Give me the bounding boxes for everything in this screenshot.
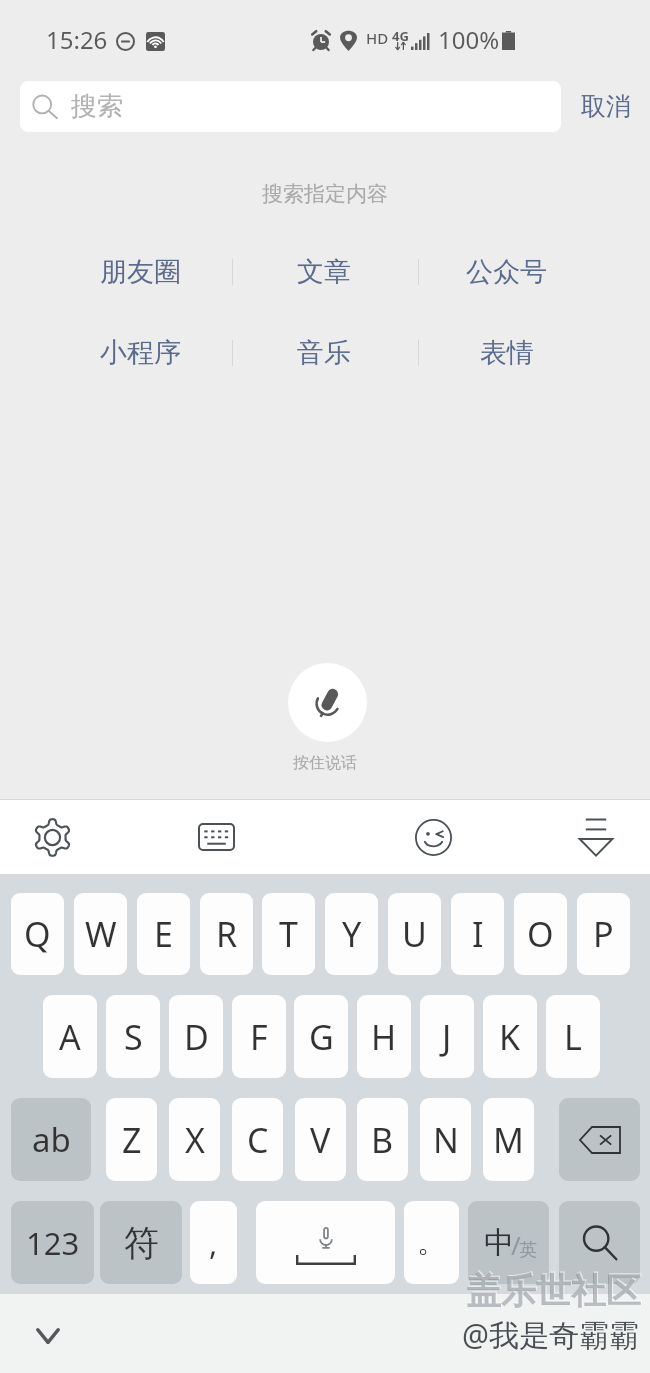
staticText: C: [247, 1117, 269, 1163]
button[interactable]: J: [420, 995, 474, 1078]
staticText: 取消: [581, 91, 631, 122]
button[interactable]: 音乐: [232, 333, 415, 373]
staticText: 。: [417, 1224, 446, 1261]
button[interactable]: Hold to talk: [288, 663, 367, 742]
button[interactable]: 123: [11, 1201, 94, 1284]
staticText: 100%: [438, 23, 500, 56]
staticText: Y: [342, 911, 362, 957]
staticText: H: [371, 1014, 397, 1060]
staticText: T: [279, 911, 298, 957]
button[interactable]: Emoji: [397, 800, 469, 874]
staticText: 符: [124, 1221, 159, 1265]
staticText: X: [185, 1117, 205, 1163]
staticText: R: [216, 911, 238, 957]
button[interactable]: M: [483, 1098, 534, 1181]
staticText: 中: [484, 1224, 514, 1262]
button[interactable]: 符: [100, 1201, 182, 1284]
button[interactable]: [256, 1201, 395, 1284]
staticText: D: [184, 1014, 209, 1060]
staticText: 文章: [297, 255, 351, 289]
button[interactable]: F: [232, 995, 286, 1078]
staticText: G: [309, 1014, 334, 1060]
button[interactable]: Keyboard layout: [180, 800, 252, 874]
button[interactable]: I: [451, 893, 504, 975]
button[interactable]: H: [357, 995, 411, 1078]
button[interactable]: 表情: [415, 333, 598, 373]
button[interactable]: X: [169, 1098, 220, 1181]
button[interactable]: Chinese / English: [468, 1201, 549, 1284]
staticText: P: [593, 911, 614, 957]
button[interactable]: Keyboard settings: [16, 800, 88, 874]
button[interactable]: R: [200, 893, 253, 975]
button[interactable]: T: [262, 893, 315, 975]
button[interactable]: 搜索: [20, 81, 561, 132]
staticText: J: [442, 1014, 452, 1060]
staticText: 按住说话: [293, 753, 357, 773]
staticText: U: [402, 911, 427, 957]
button[interactable]: P: [577, 893, 630, 975]
staticText: 搜索指定内容: [0, 181, 650, 207]
staticText: @我是奇霸霸: [462, 1314, 639, 1355]
button[interactable]: D: [169, 995, 223, 1078]
button[interactable]: 公众号: [415, 252, 598, 292]
button[interactable]: K: [483, 995, 537, 1078]
button[interactable]: N: [420, 1098, 471, 1181]
staticText: 盖乐世社区: [467, 1268, 642, 1312]
staticText: L: [564, 1014, 582, 1060]
button[interactable]: V: [295, 1098, 346, 1181]
button[interactable]: Collapse keyboard: [560, 800, 632, 874]
staticText: W: [85, 911, 117, 957]
staticText: M: [493, 1117, 524, 1163]
button[interactable]: B: [357, 1098, 408, 1181]
staticText: I: [472, 911, 484, 957]
staticText: B: [371, 1117, 394, 1163]
button[interactable]: 文章: [232, 252, 415, 292]
button[interactable]: O: [514, 893, 567, 975]
staticText: 小程序: [100, 336, 181, 370]
staticText: N: [433, 1117, 459, 1163]
staticText: 表情: [480, 336, 534, 370]
staticText: S: [124, 1014, 143, 1060]
button[interactable]: W: [74, 893, 127, 975]
staticText: K: [499, 1014, 521, 1060]
staticText: 盖乐世社区: [466, 1269, 641, 1313]
staticText: A: [59, 1014, 81, 1060]
button[interactable]: E: [137, 893, 190, 975]
staticText: ab: [32, 1117, 71, 1162]
button[interactable]: Backspace: [559, 1098, 640, 1181]
button[interactable]: ,: [190, 1201, 237, 1284]
staticText: 搜索: [71, 90, 123, 123]
button[interactable]: Q: [11, 893, 64, 975]
staticText: 英: [519, 1239, 537, 1262]
button[interactable]: L: [546, 995, 600, 1078]
staticText: 15:26: [46, 23, 108, 56]
staticText: ,: [209, 1222, 218, 1264]
staticText: 4G: [392, 27, 409, 45]
staticText: HD: [366, 28, 389, 48]
button[interactable]: S: [106, 995, 160, 1078]
staticText: 音乐: [297, 336, 351, 370]
button[interactable]: 朋友圈: [49, 252, 232, 292]
button[interactable]: C: [232, 1098, 283, 1181]
button[interactable]: G: [294, 995, 348, 1078]
staticText: F: [250, 1014, 268, 1060]
staticText: E: [154, 911, 173, 957]
button[interactable]: A: [43, 995, 97, 1078]
button[interactable]: ab: [11, 1098, 91, 1181]
staticText: /: [511, 1227, 521, 1262]
button[interactable]: Search: [559, 1201, 640, 1284]
staticText: 123: [26, 1222, 80, 1264]
staticText: O: [527, 911, 554, 957]
button[interactable]: U: [388, 893, 441, 975]
button[interactable]: 。: [404, 1201, 459, 1284]
staticText: 公众号: [466, 255, 547, 289]
staticText: V: [310, 1117, 331, 1163]
button[interactable]: Hide keyboard: [26, 1314, 70, 1358]
staticText: 朋友圈: [100, 255, 181, 289]
button[interactable]: 小程序: [49, 333, 232, 373]
button[interactable]: 取消: [561, 81, 650, 132]
staticText: Z: [122, 1117, 142, 1163]
button[interactable]: Z: [106, 1098, 157, 1181]
staticText: Q: [24, 911, 51, 957]
button[interactable]: Y: [325, 893, 378, 975]
